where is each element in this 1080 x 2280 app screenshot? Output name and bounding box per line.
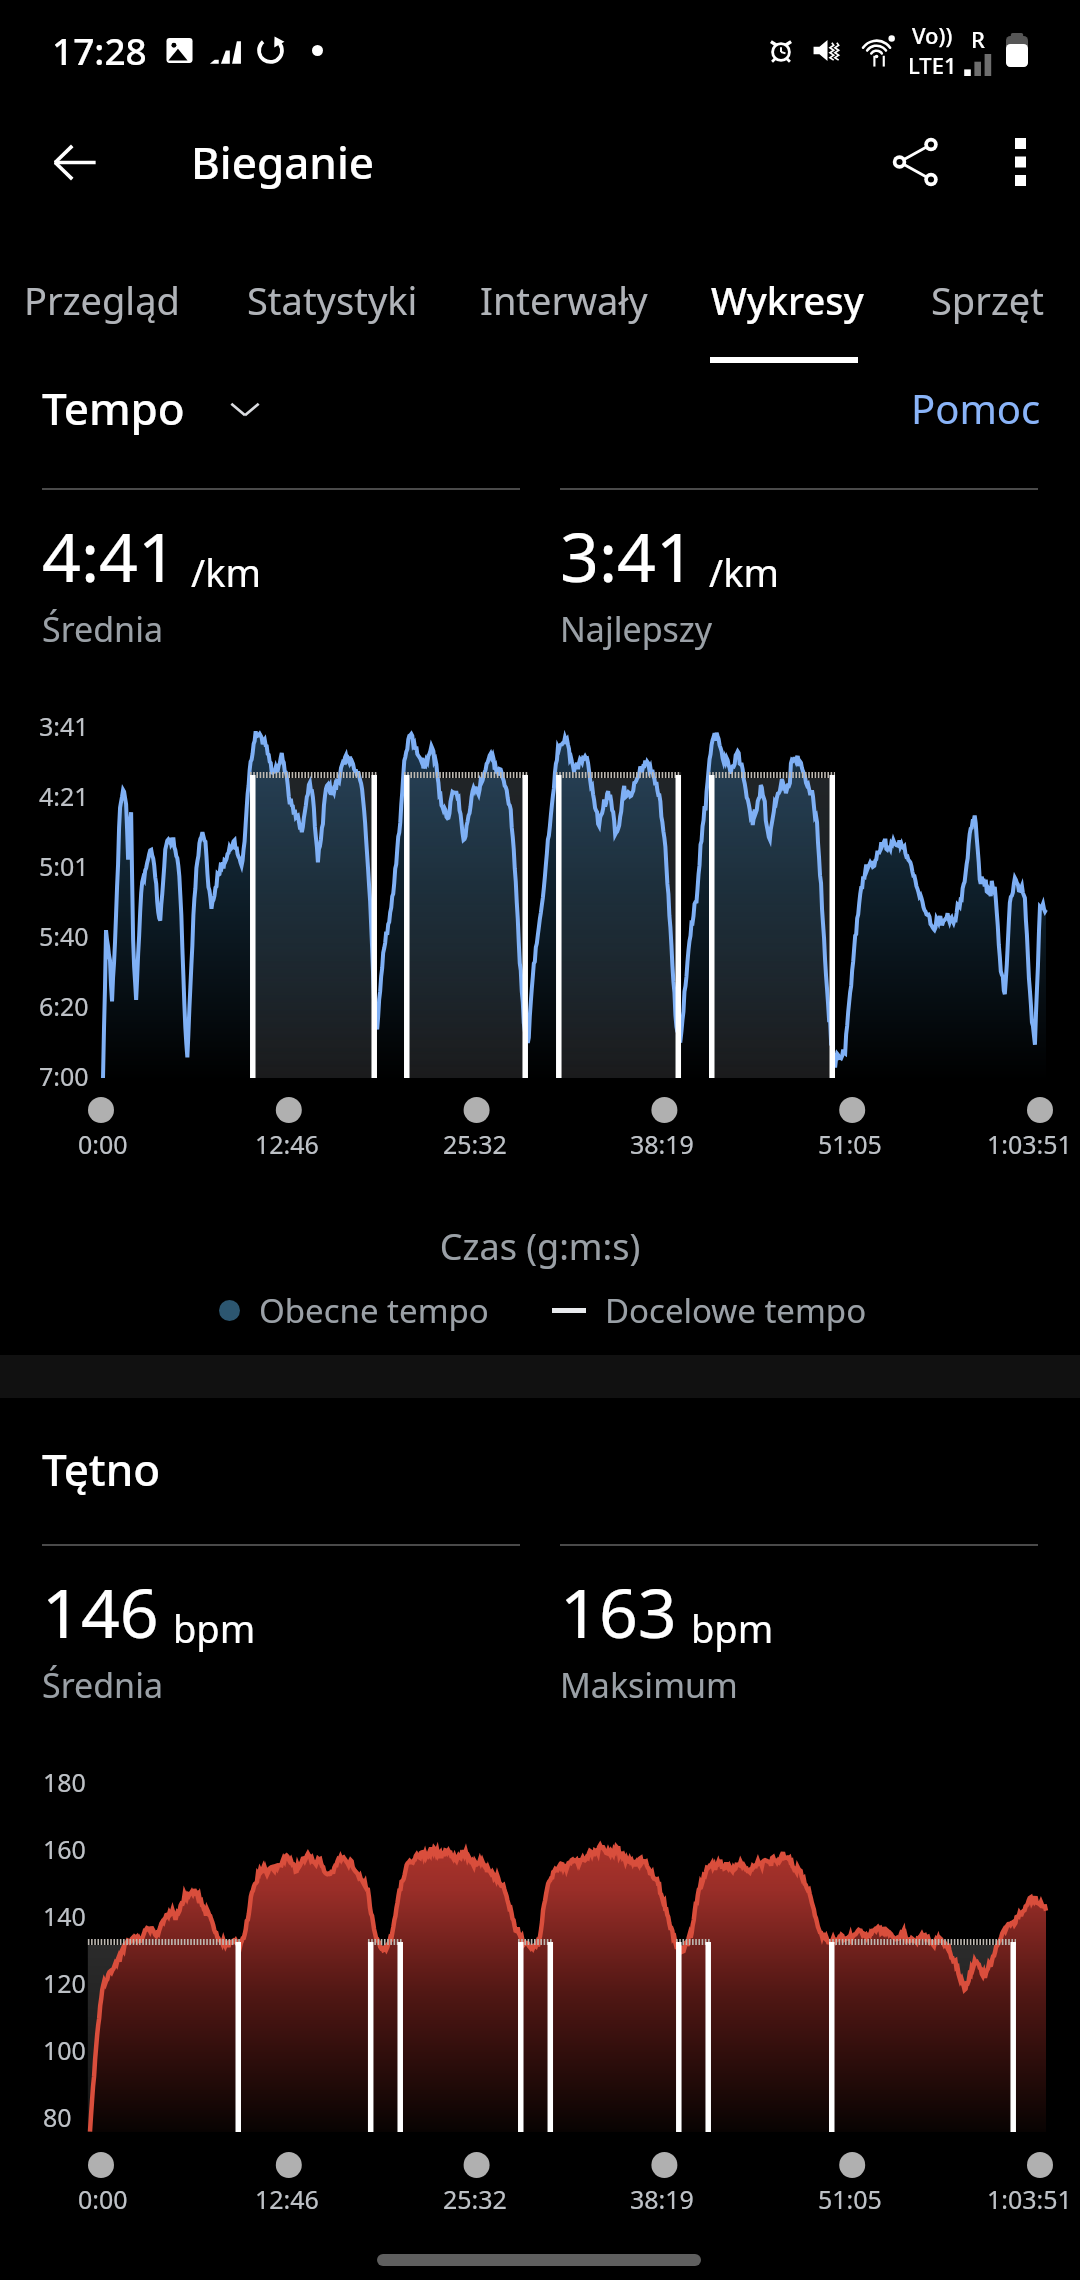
staticText: Pomoc <box>911 381 1041 435</box>
staticText: 140 <box>43 1899 86 1933</box>
staticText: 7:00 <box>39 1059 89 1093</box>
staticText: Wykresy <box>711 274 864 326</box>
button[interactable]: Przegląd <box>4 252 200 360</box>
staticText: Vo)) <box>912 20 953 50</box>
staticText: Średnia <box>42 606 163 652</box>
staticText: Tętno <box>42 1439 161 1499</box>
staticText: 51:05 <box>818 2182 882 2216</box>
button[interactable]: Pomoc <box>887 369 1080 447</box>
staticText: /km <box>191 546 261 598</box>
staticText: 80 <box>43 2100 72 2134</box>
button[interactable]: More options <box>968 110 1072 214</box>
staticText: Średnia <box>42 1662 163 1708</box>
staticText: Czas (g:m:s) <box>0 1222 1080 1271</box>
button[interactable]: Interwały <box>461 252 667 360</box>
staticText: Obecne tempo <box>259 1288 489 1333</box>
staticText: 38:19 <box>630 2182 694 2216</box>
staticText: 12:46 <box>255 2182 319 2216</box>
staticText: LTE1 <box>908 50 957 80</box>
staticText: 163 <box>560 1565 677 1658</box>
staticText: Przegląd <box>24 274 180 326</box>
button[interactable]: Share <box>864 110 968 214</box>
staticText: Maksimum <box>560 1662 738 1708</box>
staticText: 0:00 <box>78 1127 128 1161</box>
staticText: 12:46 <box>255 1127 319 1161</box>
staticText: 4:21 <box>39 779 89 813</box>
staticText: Tempo <box>42 378 185 438</box>
staticText: 100 <box>43 2033 86 2067</box>
staticText: Bieganie <box>191 132 375 192</box>
staticText: 3:41 <box>560 509 695 602</box>
staticText: bpm <box>691 1602 774 1654</box>
staticText: 4:41 <box>42 509 177 602</box>
staticText: 1:03:51 <box>987 1127 1072 1161</box>
staticText: 3:41 <box>39 709 89 743</box>
staticText: 51:05 <box>818 1127 882 1161</box>
staticText: Najlepszy <box>560 606 713 652</box>
staticText: Interwały <box>480 274 648 326</box>
staticText: bpm <box>173 1602 256 1654</box>
staticText: 38:19 <box>630 1127 694 1161</box>
button[interactable]: Wykresy <box>694 252 880 360</box>
staticText: 1:03:51 <box>987 2182 1072 2216</box>
button[interactable]: Sprzęt <box>904 252 1070 360</box>
staticText: 6:20 <box>39 989 89 1023</box>
staticText: R <box>971 24 985 54</box>
staticText: Sprzęt <box>931 274 1044 326</box>
staticText: /km <box>709 546 779 598</box>
staticText: 5:40 <box>39 919 89 953</box>
staticText: 146 <box>42 1565 159 1658</box>
button[interactable]: Statystyki <box>224 252 440 360</box>
staticText: 25:32 <box>443 1127 507 1161</box>
staticText: Statystyki <box>247 274 418 326</box>
button[interactable]: Back <box>24 112 124 212</box>
button[interactable]: Tempo <box>0 366 287 450</box>
staticText: 25:32 <box>443 2182 507 2216</box>
staticText: 120 <box>43 1966 86 2000</box>
staticText: 17:28 <box>52 25 147 75</box>
staticText: 0:00 <box>78 2182 128 2216</box>
staticText: 5:01 <box>39 849 89 883</box>
staticText: 160 <box>43 1832 86 1866</box>
staticText: Docelowe tempo <box>605 1288 867 1333</box>
staticText: 180 <box>43 1765 86 1799</box>
